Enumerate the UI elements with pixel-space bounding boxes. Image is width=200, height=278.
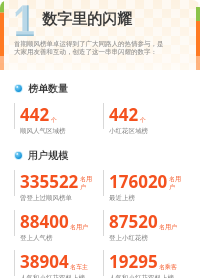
- button[interactable]: 38904: [14, 250, 97, 278]
- staticText: 442: [109, 103, 139, 126]
- staticText: 大家用友善和互动，创造了这一串串闪耀的数字：: [14, 48, 157, 56]
- staticText: 87520: [109, 210, 158, 233]
- staticText: 名用户: [80, 175, 97, 191]
- staticText: 登上小红花榜: [109, 234, 148, 242]
- staticText: 名用户: [70, 223, 88, 231]
- staticText: 88400: [20, 210, 69, 233]
- staticText: 用户规模: [28, 149, 68, 162]
- staticText: 最近上榜: [109, 194, 135, 202]
- staticText: 38904: [20, 250, 69, 273]
- staticText: 名乘客: [159, 263, 177, 271]
- other: Section marker: [14, 84, 23, 93]
- staticText: 名用户: [169, 175, 186, 191]
- staticText: 人气和小红花双料上榜: [109, 274, 174, 278]
- staticText: 个: [140, 116, 146, 124]
- staticText: 登上人气榜: [20, 234, 53, 242]
- staticText: 数字里的闪耀: [42, 10, 132, 29]
- staticText: 442: [20, 103, 50, 126]
- button[interactable]: 88400: [14, 210, 97, 242]
- staticText: 个: [51, 116, 57, 124]
- button[interactable]: 19295: [103, 250, 186, 278]
- staticText: 首期顺风榜单卓运得到了广大同路人的热情参与，是: [14, 40, 164, 48]
- staticText: 176020: [109, 170, 168, 193]
- staticText: 19295: [109, 250, 158, 273]
- staticText: 榜单数量: [28, 82, 68, 95]
- staticText: 顺风人气区域榜: [20, 127, 66, 135]
- button[interactable]: 442: [103, 103, 186, 135]
- button[interactable]: 176020: [103, 170, 186, 202]
- staticText: 名用户: [159, 223, 177, 231]
- button[interactable]: 442: [14, 103, 97, 135]
- staticText: 小红花区域榜: [109, 127, 148, 135]
- staticText: 335522: [20, 170, 79, 193]
- other: Section marker: [14, 151, 23, 160]
- button[interactable]: 335522: [14, 170, 97, 202]
- staticText: 人气和小红花双料上榜: [20, 274, 85, 278]
- staticText: 名车主: [70, 263, 88, 271]
- button[interactable]: 87520: [103, 210, 186, 242]
- staticText: 曾登上过顺风榜单: [20, 194, 72, 202]
